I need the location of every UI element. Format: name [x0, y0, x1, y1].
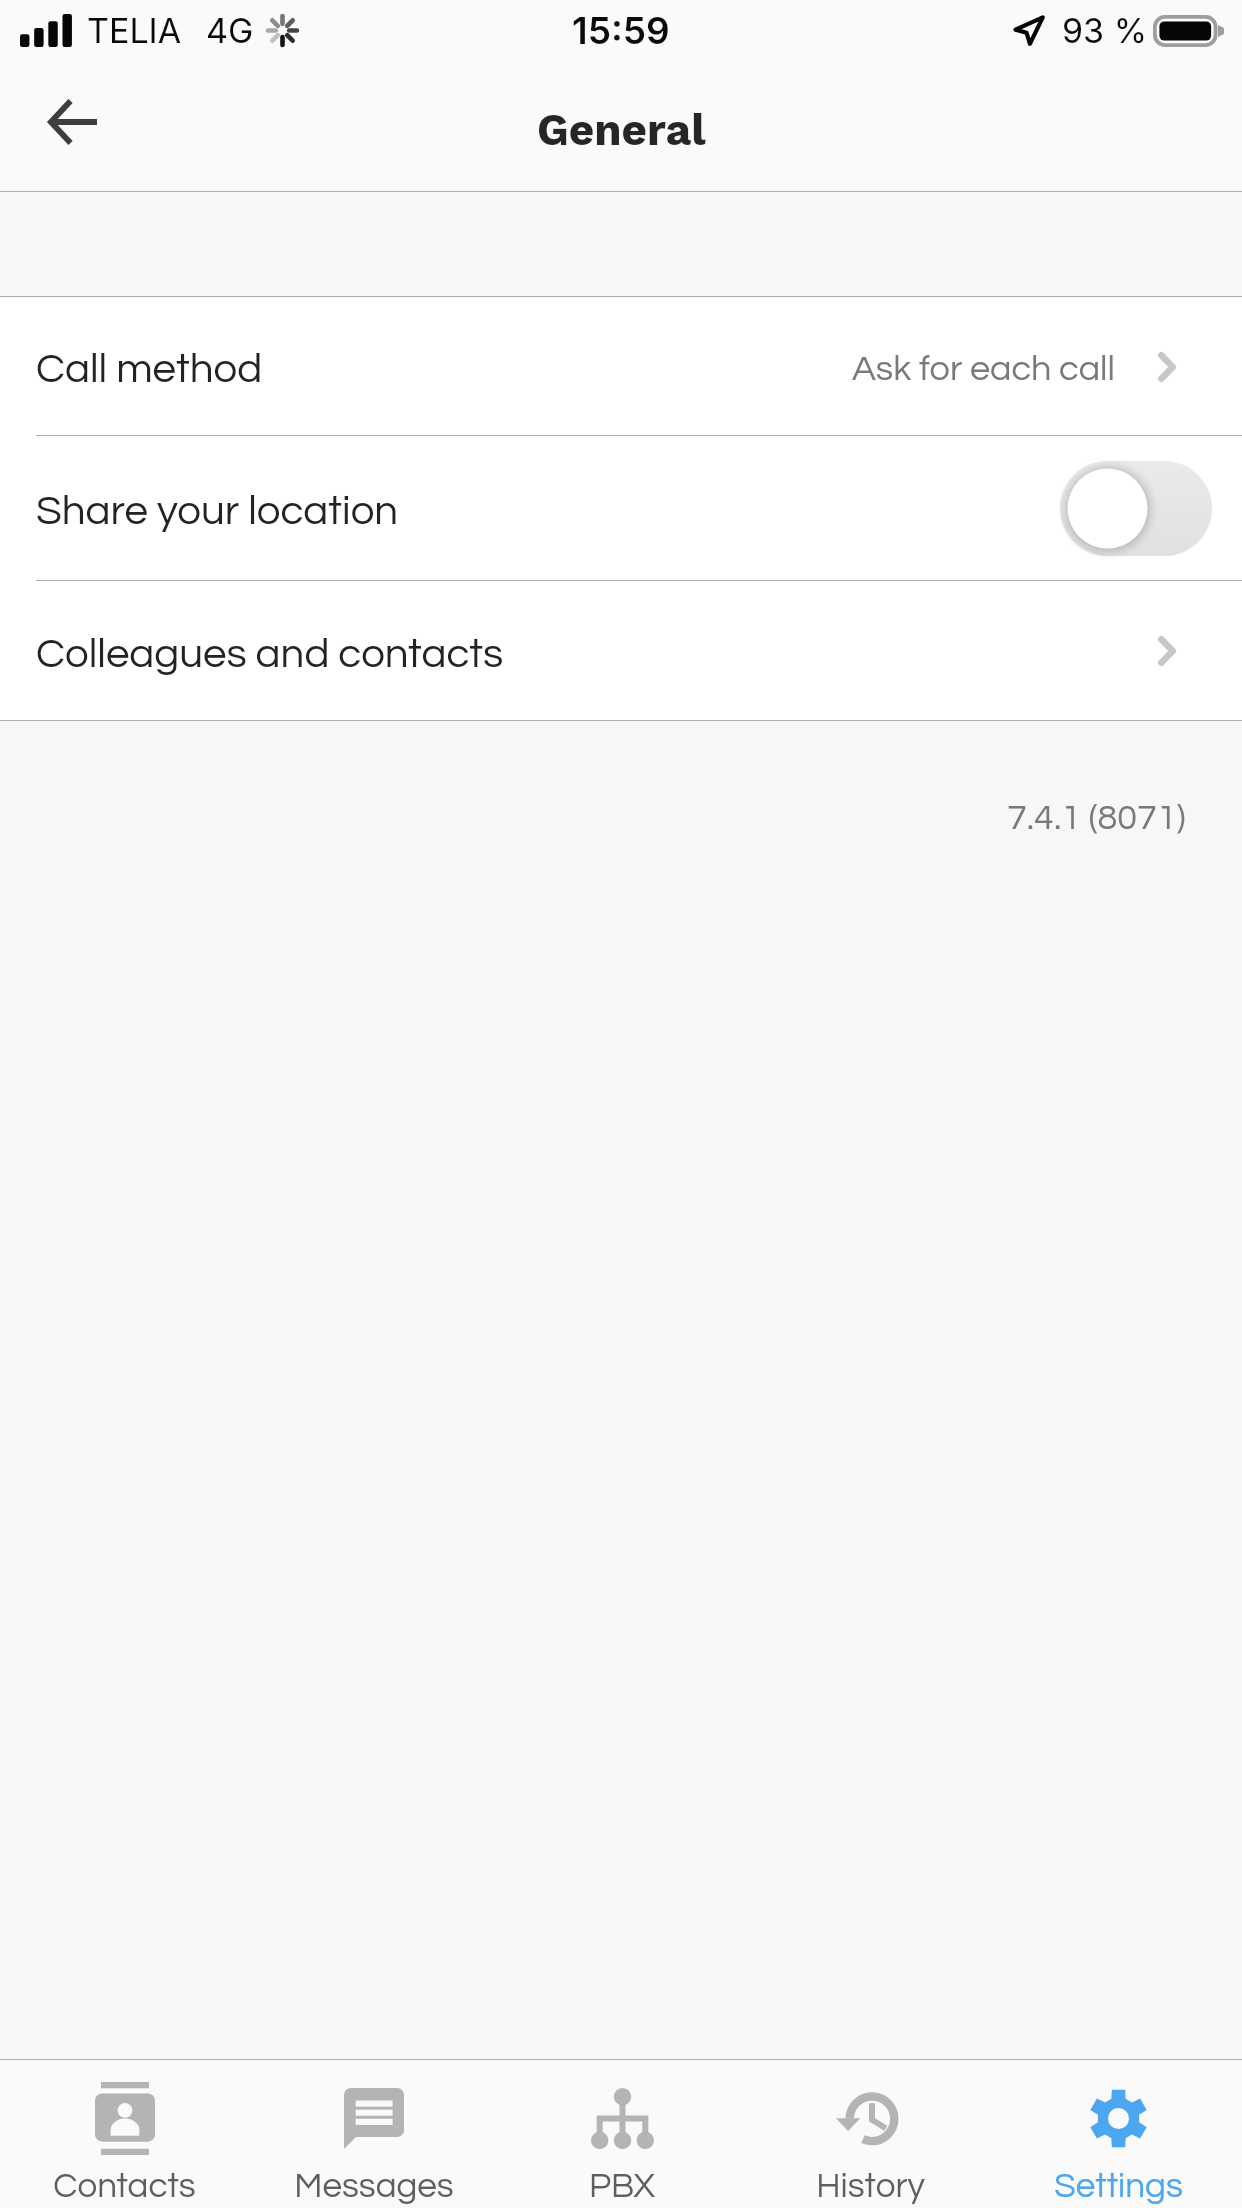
staticText: Share your location — [36, 490, 399, 533]
staticText: TELIA — [87, 10, 182, 51]
button[interactable]: Back — [10, 62, 134, 182]
button[interactable]: Messages — [249, 2061, 498, 2208]
staticText: Ask for each call — [852, 350, 1115, 387]
staticText: Contacts — [53, 2168, 196, 2204]
staticText: Settings — [1054, 2168, 1183, 2204]
staticText: Colleagues and contacts — [36, 633, 504, 676]
staticText: PBX — [589, 2168, 655, 2204]
button[interactable]: Contacts — [0, 2061, 249, 2208]
staticText: General — [537, 104, 706, 156]
staticText: 7.4.1 (8071) — [1007, 799, 1186, 836]
staticText: Messages — [294, 2168, 454, 2204]
staticText: 4G — [206, 10, 254, 51]
staticText: Call method — [36, 348, 263, 391]
button[interactable]: Share your location — [0, 437, 1242, 580]
staticText: 15:59 — [572, 8, 670, 53]
button[interactable]: Call method — [0, 298, 1242, 435]
button[interactable]: Colleagues and contacts — [0, 582, 1242, 720]
button[interactable]: Settings — [994, 2061, 1242, 2208]
staticText: History — [816, 2168, 925, 2204]
staticText: 93 % — [1062, 10, 1148, 51]
button[interactable]: PBX — [498, 2061, 746, 2208]
button[interactable]: History — [746, 2061, 994, 2208]
button[interactable]: Share your location — [1060, 461, 1212, 556]
